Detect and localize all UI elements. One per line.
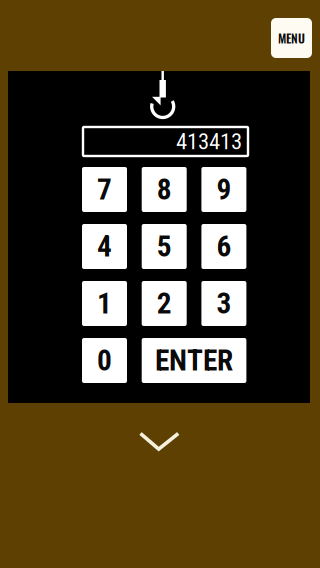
button[interactable]: 1 — [82, 281, 127, 326]
button[interactable]: ENTER — [142, 338, 246, 383]
staticText: 6 — [216, 229, 231, 264]
button[interactable]: 0 — [82, 338, 127, 383]
staticText: MENU — [278, 29, 305, 47]
button[interactable]: Scroll down — [128, 420, 190, 464]
button[interactable]: 7 — [82, 167, 127, 212]
staticText: 1 — [97, 286, 112, 321]
button[interactable]: MENU — [271, 18, 312, 58]
button[interactable]: 3 — [201, 281, 246, 326]
button[interactable]: 5 — [142, 224, 187, 269]
button[interactable]: 8 — [142, 167, 187, 212]
button[interactable]: 4 — [82, 224, 127, 269]
staticText: 0 — [97, 343, 112, 378]
staticText: 2 — [157, 286, 172, 321]
staticText: 3 — [216, 286, 231, 321]
staticText: 413413 — [176, 128, 242, 155]
button[interactable]: 9 — [201, 167, 246, 212]
staticText: 5 — [157, 229, 172, 264]
staticText: 9 — [216, 172, 231, 207]
staticText: 8 — [157, 172, 172, 207]
staticText: ENTER — [155, 343, 233, 378]
button[interactable]: 2 — [142, 281, 187, 326]
button[interactable]: 6 — [201, 224, 246, 269]
staticText: 7 — [97, 172, 112, 207]
staticText: 4 — [97, 229, 112, 264]
